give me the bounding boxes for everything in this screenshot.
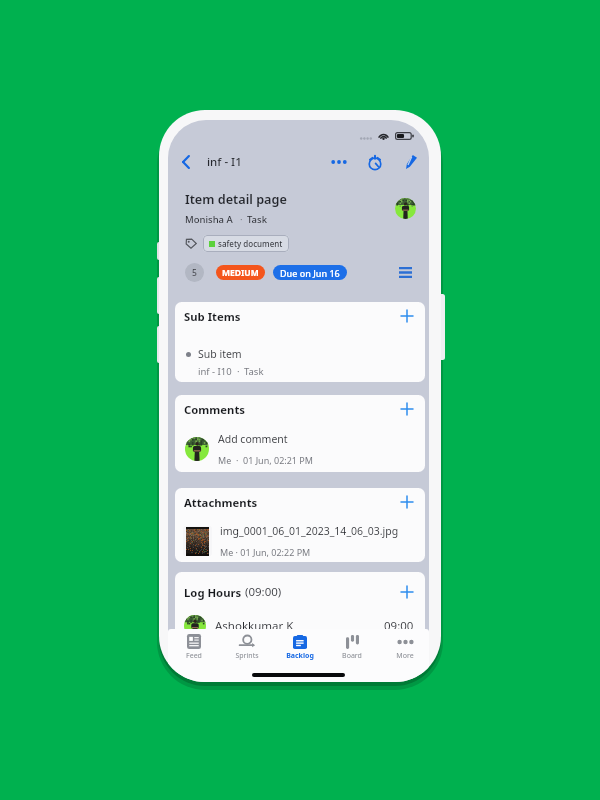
button[interactable]: Profile picture bbox=[185, 437, 209, 461]
button[interactable]: Add to Sub Items bbox=[397, 306, 417, 326]
button[interactable]: Sub item bbox=[175, 347, 425, 382]
button[interactable]: Feed bbox=[172, 634, 216, 661]
staticText: Monisha A bbox=[185, 213, 233, 226]
button[interactable]: Back bbox=[175, 151, 197, 173]
button[interactable]: Edit bbox=[399, 150, 423, 174]
button[interactable]: Backlog bbox=[278, 634, 322, 661]
button[interactable]: Board bbox=[330, 634, 374, 661]
button[interactable]: More bbox=[383, 634, 427, 661]
staticText: · bbox=[240, 213, 243, 226]
button[interactable]: img_0001_06_01_2023_14_06_03.jpg bbox=[175, 524, 425, 562]
staticText: Sub item bbox=[198, 347, 242, 361]
button[interactable]: Profile picture bbox=[175, 615, 425, 649]
button[interactable]: Add to Attachments bbox=[397, 492, 417, 512]
button[interactable]: Due on Jun 16 bbox=[273, 265, 347, 280]
button[interactable]: Sprints bbox=[225, 634, 269, 661]
staticText: Add comment bbox=[218, 432, 288, 446]
button[interactable]: 5 bbox=[185, 263, 204, 282]
staticText: Sprints bbox=[235, 651, 259, 661]
staticText: Attachments bbox=[184, 495, 258, 510]
staticText: MEDIUM bbox=[222, 267, 259, 279]
staticText: Task bbox=[244, 365, 264, 378]
staticText: img_0001_06_01_2023_14_06_03.jpg bbox=[220, 524, 399, 538]
staticText: Comments bbox=[184, 402, 246, 417]
staticText: Me · 01 Jun, 02:22 PM bbox=[220, 546, 311, 558]
button[interactable]: Menu bbox=[394, 261, 416, 283]
staticText: Sub Items bbox=[184, 309, 241, 324]
staticText: Backlog bbox=[286, 651, 314, 661]
staticText: Task bbox=[247, 213, 267, 226]
staticText: More bbox=[396, 651, 414, 661]
staticText: inf - I1 bbox=[207, 154, 242, 170]
button[interactable]: Profile picture bbox=[395, 198, 416, 219]
button[interactable]: Timer bbox=[363, 150, 387, 174]
staticText: Feed bbox=[186, 651, 202, 661]
staticText: (09:00) bbox=[245, 584, 282, 600]
button[interactable]: Profile picture bbox=[175, 432, 425, 472]
staticText: · bbox=[237, 365, 240, 378]
staticText: 5 bbox=[192, 267, 197, 279]
staticText: Ashokkumar K bbox=[215, 618, 294, 634]
staticText: safety document bbox=[218, 238, 283, 249]
button[interactable]: More options bbox=[327, 150, 351, 174]
button[interactable]: safety document bbox=[203, 235, 289, 252]
button[interactable]: Add to Log Hours bbox=[397, 582, 417, 602]
button[interactable]: Add to Comments bbox=[397, 399, 417, 419]
staticText: 09:00 bbox=[384, 618, 414, 634]
button[interactable]: MEDIUM bbox=[216, 265, 265, 280]
button[interactable]: Profile picture bbox=[184, 615, 206, 637]
staticText: Due on Jun 16 bbox=[280, 267, 340, 279]
staticText: Me · 01 Jun, 02:21 PM bbox=[218, 454, 313, 466]
staticText: Log Hours bbox=[184, 585, 242, 600]
staticText: Board bbox=[342, 651, 362, 661]
staticText: inf - I10 bbox=[198, 365, 232, 378]
staticText: Item detail page bbox=[185, 190, 287, 207]
